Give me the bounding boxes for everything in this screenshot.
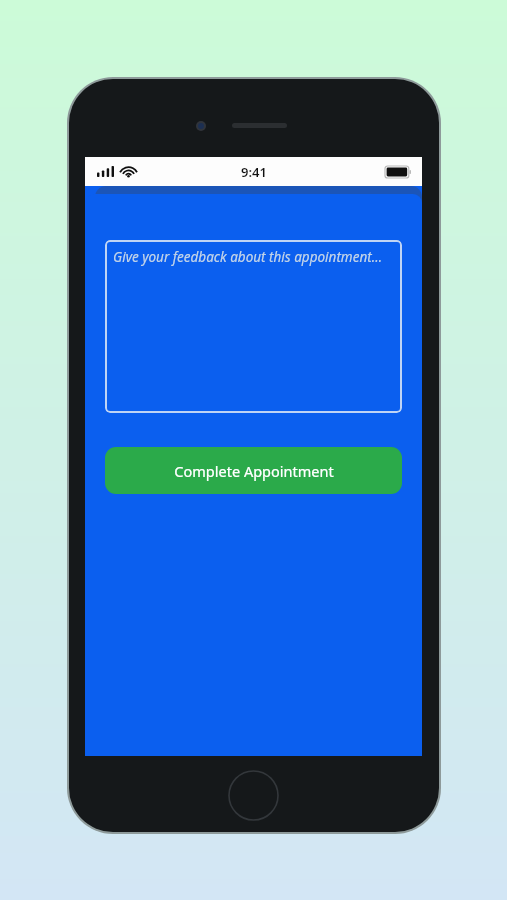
button[interactable]: Complete Appointment [105, 447, 402, 494]
staticText: Give your feedback about this appointmen… [113, 248, 383, 266]
staticText: 9:41 [241, 163, 267, 181]
staticText: Complete Appointment [174, 461, 334, 481]
button[interactable]: Give your feedback about this appointmen… [105, 240, 402, 413]
